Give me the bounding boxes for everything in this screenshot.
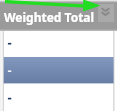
staticText: Weighted Total (4, 9, 95, 25)
button[interactable]: Weighted Total (0, 0, 117, 111)
button[interactable]: Weighted Total (0, 0, 117, 31)
button[interactable]: Expand (98, 4, 114, 22)
